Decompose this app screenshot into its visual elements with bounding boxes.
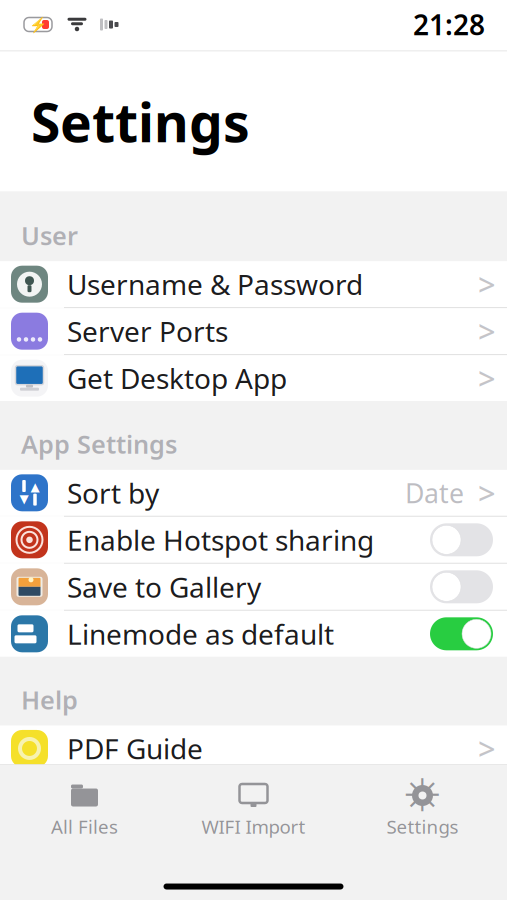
button[interactable]: Save to Gallery [0,564,507,610]
button[interactable]: ▼ [0,470,507,516]
staticText: All Files [51,814,118,839]
staticText: Server Ports [67,313,228,350]
staticText: Save to Gallery [67,568,261,605]
button[interactable]: All Files [0,778,169,843]
staticText: > [478,728,496,769]
staticText: WIFI Import [201,814,305,839]
staticText: ▼ [19,492,28,506]
staticText: Get Desktop App [67,360,287,397]
staticText: ⚡ [29,16,47,33]
staticText: User [21,218,78,252]
staticText: 21:28 [413,6,485,43]
staticText: > [478,472,496,513]
staticText: > [478,358,496,398]
staticText: PDF Guide [67,730,203,767]
staticText: Sort by [67,474,159,511]
button[interactable]: WIFI Import [169,778,338,843]
staticText: Linemode as default [67,615,334,652]
staticText: > [478,311,496,351]
button[interactable]: Username & Password [0,261,507,307]
button[interactable]: PDF Guide [0,725,507,771]
staticText: Settings [386,814,458,839]
button[interactable]: Linemode as default [0,611,507,657]
button[interactable]: Enable Hotspot sharing [0,517,507,563]
staticText: Help [21,683,78,716]
staticText: > [478,264,496,304]
staticText: Date [405,475,464,510]
staticText: Enable Hotspot sharing [67,521,374,558]
staticText: Username & Password [67,266,363,303]
staticText: ▲ [30,480,39,494]
staticText: App Settings [21,427,177,461]
staticText: Settings [31,86,250,157]
staticText: ✳ [403,770,441,821]
button[interactable]: ✳ [338,778,507,843]
button[interactable]: Get Desktop App [0,355,507,401]
button[interactable]: Server Ports [0,308,507,354]
